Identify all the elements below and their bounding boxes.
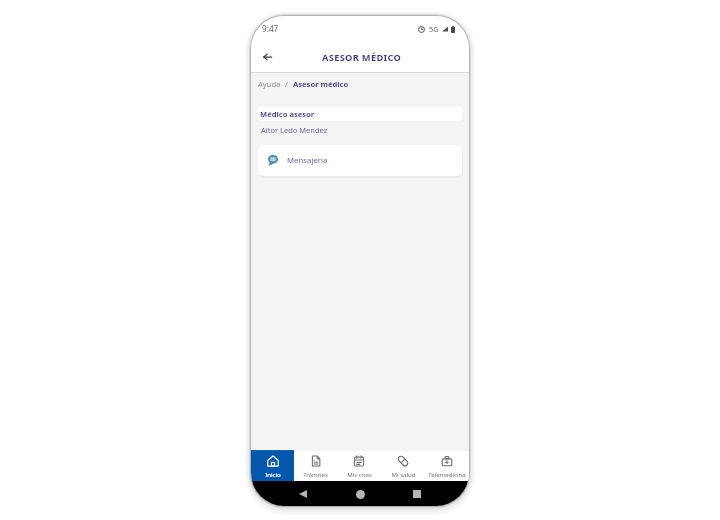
staticText: Trámites: [303, 470, 328, 478]
staticText: Mensajeria: [287, 155, 328, 166]
staticText: Ayuda: [258, 79, 281, 89]
staticText: /: [281, 79, 292, 89]
staticText: 9:47: [262, 23, 279, 34]
button[interactable]: Home: [352, 486, 368, 502]
button[interactable]: Mensajeria: [258, 145, 462, 176]
staticText: ASESOR MÉDICO: [322, 51, 402, 64]
staticText: Médico asesor: [260, 109, 315, 119]
staticText: 5G: [429, 24, 439, 34]
staticText: Inicio: [265, 470, 281, 478]
button[interactable]: Inicio: [251, 450, 294, 481]
button[interactable]: Telemedicina: [425, 450, 469, 481]
button[interactable]: Back: [256, 46, 278, 68]
staticText: Mi salud: [391, 470, 416, 478]
staticText: Telemedicina: [428, 470, 466, 478]
button[interactable]: Back: [295, 486, 311, 502]
staticText: Aitor Ledo Mendez: [261, 125, 328, 135]
button[interactable]: Trámites: [294, 450, 337, 481]
button[interactable]: Mis citas: [337, 450, 381, 481]
staticText: Mis citas: [347, 470, 372, 478]
staticText: Asesor médico: [293, 79, 349, 89]
button[interactable]: Recent apps: [409, 486, 425, 502]
button[interactable]: Mi salud: [381, 450, 425, 481]
